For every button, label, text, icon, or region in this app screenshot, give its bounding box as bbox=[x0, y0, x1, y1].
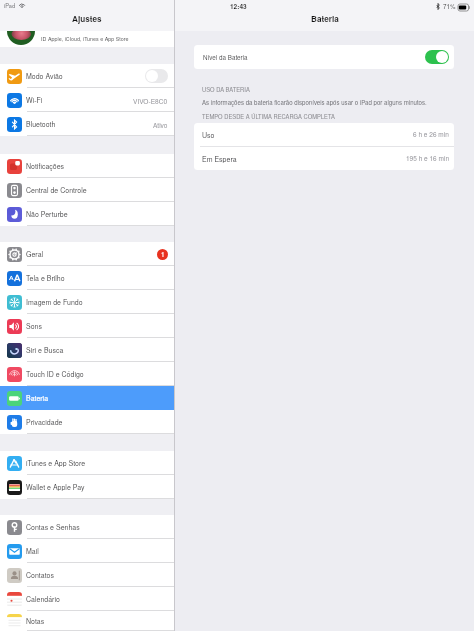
button[interactable]: Mail bbox=[0, 539, 174, 563]
button[interactable]: Em Espera bbox=[194, 147, 454, 170]
staticText: Bateria bbox=[26, 393, 49, 403]
staticText: Bateria bbox=[311, 13, 339, 25]
button[interactable]: Não Perturbe bbox=[0, 202, 174, 226]
button[interactable]: iTunes e App Store bbox=[0, 451, 174, 475]
staticText: Modo Avião bbox=[26, 71, 63, 81]
staticText: Siri e Busca bbox=[26, 345, 64, 355]
staticText: Ajustes bbox=[72, 13, 102, 25]
staticText: As informações da bateria ficarão dispon… bbox=[202, 98, 427, 107]
staticText: Central de Controle bbox=[26, 185, 87, 195]
staticText: Notas bbox=[26, 616, 45, 626]
button[interactable]: Imagem de Fundo bbox=[0, 290, 174, 314]
staticText: Nível da Bateria bbox=[203, 53, 248, 62]
button[interactable]: Modo Avião bbox=[0, 64, 174, 88]
staticText: Contas e Senhas bbox=[26, 522, 80, 532]
staticText: 71% bbox=[443, 2, 456, 11]
staticText: Wallet e Apple Pay bbox=[26, 482, 85, 492]
button[interactable]: Nível da Bateria bbox=[194, 45, 454, 69]
button[interactable]: Bateria bbox=[0, 386, 174, 410]
staticText: 12:43 bbox=[230, 2, 247, 11]
button[interactable]: Uso bbox=[194, 123, 454, 146]
staticText: Bluetooth bbox=[26, 119, 56, 129]
button[interactable]: Touch ID e Código bbox=[0, 362, 174, 386]
button[interactable]: Notificações bbox=[0, 154, 174, 178]
staticText: Notificações bbox=[26, 161, 65, 171]
staticText: Calendário bbox=[26, 594, 60, 604]
staticText: iTunes e App Store bbox=[26, 458, 86, 468]
button[interactable]: Calendário bbox=[0, 587, 174, 611]
staticText: Touch ID e Código bbox=[26, 369, 84, 379]
button[interactable]: Contas e Senhas bbox=[0, 515, 174, 539]
staticText: Em Espera bbox=[202, 154, 237, 164]
staticText: Mail bbox=[26, 546, 39, 556]
button[interactable]: Notas bbox=[0, 611, 174, 631]
button[interactable]: ID Apple, iCloud, iTunes e App Store bbox=[0, 31, 174, 47]
staticText: TEMPO DESDE A ÚLTIMA RECARGA COMPLETA bbox=[202, 112, 335, 120]
button[interactable]: Siri e Busca bbox=[0, 338, 174, 362]
button[interactable]: Privacidade bbox=[0, 410, 174, 434]
staticText: Não Perturbe bbox=[26, 209, 68, 219]
staticText: VIVO-E8C0 bbox=[133, 96, 168, 105]
button[interactable]: Tela e Brilho bbox=[0, 266, 174, 290]
staticText: 6 h e 26 min bbox=[413, 130, 449, 139]
staticText: Imagem de Fundo bbox=[26, 297, 83, 307]
button[interactable]: Bluetooth bbox=[0, 112, 174, 136]
button[interactable]: Wi-Fi bbox=[0, 88, 174, 112]
staticText: Geral bbox=[26, 249, 44, 259]
button[interactable]: Sons bbox=[0, 314, 174, 338]
staticText: 195 h e 16 min bbox=[406, 154, 449, 163]
staticText: Wi-Fi bbox=[26, 95, 43, 105]
staticText: Privacidade bbox=[26, 417, 63, 427]
staticText: Ativo bbox=[153, 120, 168, 129]
staticText: Tela e Brilho bbox=[26, 273, 65, 283]
staticText: 1 bbox=[161, 250, 165, 259]
button[interactable]: Wallet e Apple Pay bbox=[0, 475, 174, 499]
staticText: Sons bbox=[26, 321, 42, 331]
button[interactable]: Central de Controle bbox=[0, 178, 174, 202]
staticText: iPad bbox=[4, 2, 16, 10]
staticText: ID Apple, iCloud, iTunes e App Store bbox=[41, 35, 129, 43]
staticText: Uso bbox=[202, 130, 215, 140]
button[interactable]: Geral bbox=[0, 242, 174, 266]
button[interactable]: Contatos bbox=[0, 563, 174, 587]
staticText: Contatos bbox=[26, 570, 54, 580]
staticText: USO DA BATERIA bbox=[202, 85, 250, 93]
